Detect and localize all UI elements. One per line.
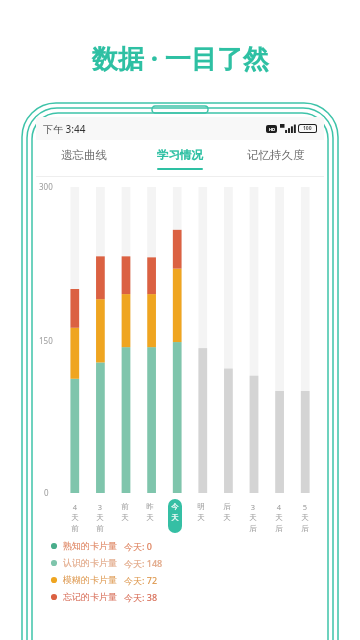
button[interactable]: 忘记的卡片量: [50, 588, 324, 605]
staticText: 忘记的卡片量: [63, 591, 117, 602]
button[interactable]: 熟知的卡片量: [50, 537, 324, 554]
staticText: 100: [303, 125, 312, 132]
button[interactable]: 明 天: [188, 499, 214, 533]
button[interactable]: 4 天 后: [266, 499, 292, 533]
staticText: 后 天: [223, 502, 231, 522]
staticText: 认识的卡片量: [63, 557, 117, 568]
button[interactable]: 3 天 前: [87, 499, 112, 533]
staticText: 明 天: [197, 502, 205, 522]
button[interactable]: 后 天: [214, 499, 240, 533]
staticText: 150: [39, 335, 53, 346]
staticText: 0: [44, 487, 49, 498]
staticText: 今天: 148: [124, 557, 163, 569]
staticText: 下午 3:44: [43, 122, 86, 136]
staticText: 3 天 前: [96, 502, 104, 533]
staticText: 3 天 后: [249, 502, 257, 533]
staticText: 5 天 后: [301, 502, 309, 533]
button[interactable]: 认识的卡片量: [50, 554, 324, 571]
button[interactable]: 4 天 前: [62, 499, 87, 533]
button[interactable]: 记忆持久度: [228, 140, 324, 176]
staticText: 熟知的卡片量: [63, 540, 117, 551]
staticText: HD: [269, 127, 275, 132]
button[interactable]: 前 天: [112, 499, 137, 533]
button[interactable]: 昨 天: [137, 499, 162, 533]
staticText: 300: [39, 181, 53, 192]
staticText: 记忆持久度: [247, 148, 305, 162]
staticText: 遗忘曲线: [61, 148, 107, 162]
button[interactable]: 学习情况: [132, 140, 228, 176]
button[interactable]: 模糊的卡片量: [50, 571, 324, 588]
staticText: 今天: 38: [124, 591, 158, 603]
button[interactable]: 今 天: [162, 499, 188, 533]
staticText: 今 天: [171, 502, 179, 522]
staticText: 今天: 72: [124, 574, 158, 586]
button[interactable]: 5 天 后: [292, 499, 318, 533]
staticText: 4 天 后: [275, 502, 283, 533]
staticText: 学习情况: [157, 148, 203, 162]
staticText: 模糊的卡片量: [63, 574, 117, 585]
staticText: 4 天 前: [71, 502, 79, 533]
button[interactable]: 3 天 后: [240, 499, 266, 533]
button[interactable]: 遗忘曲线: [36, 140, 132, 176]
staticText: 今天: 0: [124, 540, 152, 552]
staticText: 数据 · 一目了然: [92, 40, 269, 76]
staticText: 前 天: [121, 502, 129, 522]
staticText: 昨 天: [146, 502, 154, 522]
